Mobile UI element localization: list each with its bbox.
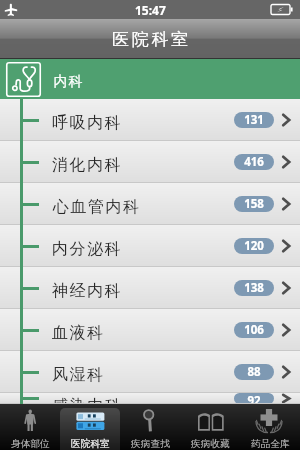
staticText: 92: [247, 393, 261, 404]
staticText: 风湿科: [52, 365, 105, 385]
button[interactable]: 血液科: [0, 309, 300, 351]
staticText: 内分泌科: [52, 239, 123, 259]
staticText: 消化内科: [52, 155, 123, 175]
button[interactable]: 呼吸内科: [0, 99, 300, 141]
staticText: 106: [244, 322, 264, 338]
button[interactable]: 内科: [0, 59, 300, 99]
other: Battery charging: [271, 3, 295, 16]
staticText: 身体部位: [11, 438, 50, 450]
staticText: 15:47: [135, 2, 166, 18]
button[interactable]: 感染内科: [0, 393, 300, 404]
staticText: 120: [244, 238, 264, 254]
other: Airplane mode: [4, 3, 18, 17]
button[interactable]: 神经内科: [0, 267, 300, 309]
staticText: 158: [244, 196, 264, 212]
button[interactable]: 身体部位: [0, 404, 60, 450]
staticText: 血液科: [52, 323, 105, 343]
staticText: 医院科室: [71, 438, 110, 450]
staticText: 疾病查找: [131, 438, 170, 450]
staticText: 医院科室: [112, 29, 191, 50]
staticText: 心血管内科: [52, 197, 140, 217]
button[interactable]: 心血管内科: [0, 183, 300, 225]
button[interactable]: 消化内科: [0, 141, 300, 183]
staticText: 416: [244, 154, 264, 170]
button[interactable]: 药品全库: [240, 404, 300, 450]
button[interactable]: 医院科室: [60, 404, 120, 450]
staticText: 内科: [53, 73, 83, 91]
button[interactable]: 风湿科: [0, 351, 300, 393]
staticText: 138: [244, 280, 264, 296]
button[interactable]: 疾病收藏: [180, 404, 240, 450]
staticText: 疾病收藏: [191, 438, 230, 450]
staticText: 药品全库: [251, 438, 290, 450]
staticText: 神经内科: [52, 281, 123, 301]
button[interactable]: 内分泌科: [0, 225, 300, 267]
staticText: 131: [244, 112, 264, 128]
staticText: 88: [247, 364, 261, 380]
staticText: 感染内科: [52, 396, 123, 407]
staticText: 呼吸内科: [52, 113, 123, 133]
button[interactable]: 疾病查找: [120, 404, 180, 450]
